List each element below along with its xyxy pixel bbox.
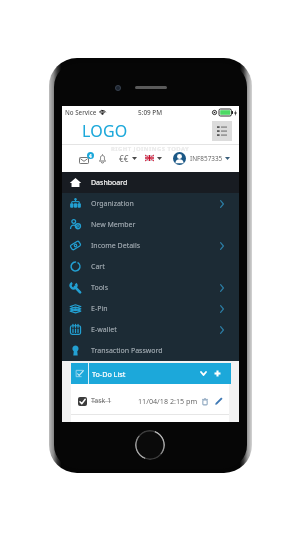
staticText: To-Do List [92, 369, 126, 379]
button[interactable]: Messages [79, 155, 89, 162]
staticText: LOGO [82, 120, 128, 142]
button[interactable]: Add task [214, 370, 221, 377]
button[interactable]: Delete [202, 398, 208, 405]
staticText: 5:09 PM [138, 108, 163, 117]
staticText: No Service [65, 108, 97, 116]
staticText: RIGHT JOININGS TODAY [111, 145, 190, 153]
staticText: €€ [119, 153, 129, 164]
staticText: INF857335 [190, 154, 223, 163]
staticText: Income Details [91, 241, 141, 251]
button[interactable]: Tools [62, 277, 239, 298]
button[interactable]: Menu [212, 121, 232, 141]
button[interactable]: Cart [62, 256, 239, 277]
button[interactable]: Language [145, 155, 162, 161]
staticText: 4 [89, 153, 92, 159]
button[interactable]: Income Details [62, 235, 239, 256]
button[interactable]: Organization [62, 193, 239, 214]
button[interactable]: Edit [215, 397, 223, 405]
button[interactable]: €€ [119, 153, 137, 164]
button[interactable]: Notifications [99, 154, 106, 163]
button[interactable]: Transaction Password [62, 340, 239, 361]
button[interactable]: To-Do List [71, 363, 231, 384]
staticText: Organization [91, 199, 134, 209]
staticText: Tools [91, 283, 109, 293]
staticText: E-wallet [91, 325, 117, 335]
staticText: E-Pin [91, 304, 108, 314]
button[interactable]: E-wallet [62, 319, 239, 340]
staticText: Dashboard [91, 178, 128, 188]
button[interactable]: Dashboard [62, 172, 239, 193]
button[interactable]: Task 1 [71, 384, 229, 414]
staticText: Cart [91, 262, 105, 272]
button[interactable]: INF857335 [173, 152, 230, 165]
staticText: 11/04/18 2:15 pm [138, 396, 198, 406]
button[interactable]: Collapse [200, 371, 207, 376]
button[interactable]: New Member [62, 214, 239, 235]
staticText: New Member [91, 220, 136, 230]
staticText: Task 1 [91, 396, 112, 406]
staticText: Transaction Password [91, 346, 163, 356]
button[interactable]: E-Pin [62, 298, 239, 319]
